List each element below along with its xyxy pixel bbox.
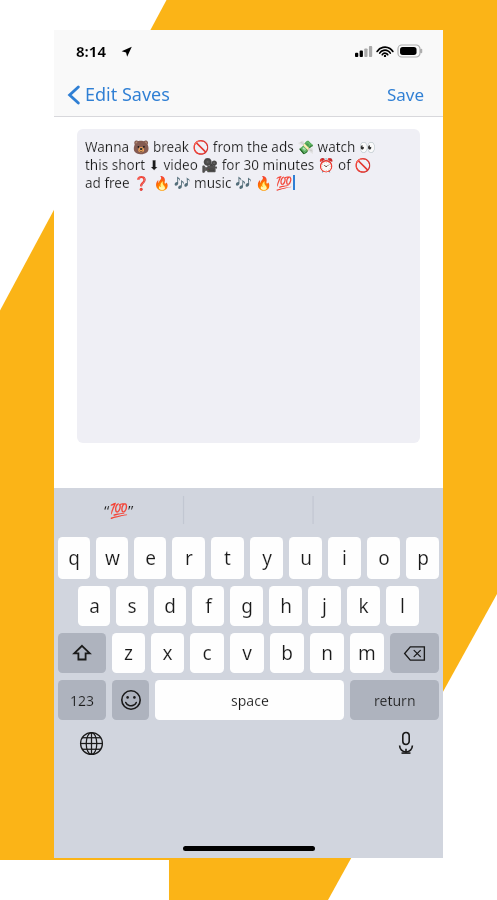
staticText: n [321,640,333,666]
button[interactable]: space [155,680,344,720]
staticText: d [164,593,176,619]
staticText: r [185,545,193,571]
button[interactable]: p [406,537,439,579]
staticText: x [162,640,173,666]
button[interactable]: return [350,680,439,720]
staticText: c [202,640,212,666]
staticText: f [205,593,212,619]
button[interactable]: Save [383,79,429,110]
button[interactable]: k [347,586,380,626]
button[interactable]: x [151,633,184,673]
button[interactable]: q [58,537,90,579]
staticText: Save [387,83,425,106]
button[interactable]: “💯” [54,488,183,532]
staticText: Wanna 🐻 break 🚫 from the ads 💸 watch 👀 [85,138,376,156]
staticText: a [89,593,100,619]
staticText: this short ⬇️ video 🎥 for 30 minutes ⏰ o… [85,156,372,174]
staticText: w [105,545,120,571]
button[interactable]: n [310,633,344,673]
staticText: space [231,691,269,710]
button[interactable]: w [96,537,128,579]
staticText: return [374,691,416,710]
button[interactable]: l [386,586,419,626]
staticText: j [322,593,327,619]
button[interactable]: y [250,537,283,579]
staticText: i [342,545,347,571]
button[interactable]: i [328,537,361,579]
button[interactable]: Dictation [391,728,421,758]
staticText: t [224,545,231,571]
staticText: k [358,593,369,619]
staticText: p [417,545,429,571]
staticText: Edit Saves [85,82,170,107]
button[interactable]: v [230,633,264,673]
button[interactable]: a [78,586,110,626]
button[interactable]: Shift [58,633,106,673]
button[interactable]: d [154,586,186,626]
button[interactable]: r [172,537,205,579]
staticText: v [242,640,252,666]
staticText: “💯” [104,500,134,520]
staticText: g [241,593,253,619]
button[interactable]: Wanna 🐻 break 🚫 from the ads 💸 watch 👀 [77,129,420,443]
staticText: o [378,545,390,571]
button[interactable]: g [230,586,263,626]
button[interactable]: u [289,537,322,579]
button[interactable]: e [134,537,166,579]
button[interactable]: Edit Saves [64,78,174,111]
staticText: 8:14 [76,41,106,61]
button[interactable]: j [308,586,341,626]
button[interactable]: h [269,586,302,626]
staticText: m [358,640,376,666]
staticText: ad free ❓ 🔥 🎶 music 🎶 🔥 💯 [85,174,293,192]
button[interactable]: Backspace [390,633,439,673]
button[interactable]: Change keyboard language [76,728,106,758]
staticText: b [281,640,293,666]
staticText: z [124,640,133,666]
staticText: y [262,545,272,571]
button[interactable]: s [116,586,148,626]
button[interactable]: t [211,537,244,579]
button[interactable]: b [270,633,304,673]
staticText: l [400,593,405,619]
staticText: s [127,593,137,619]
button[interactable]: c [190,633,224,673]
staticText: u [300,545,312,571]
button[interactable]: f [192,586,224,626]
button[interactable]: z [112,633,145,673]
staticText: h [280,593,292,619]
button[interactable]: o [367,537,400,579]
staticText: q [68,545,80,571]
staticText: 123 [70,691,95,710]
button[interactable]: 123 [58,680,106,720]
button[interactable]: Emoji [112,680,149,720]
button[interactable]: m [350,633,384,673]
staticText: e [145,545,156,571]
